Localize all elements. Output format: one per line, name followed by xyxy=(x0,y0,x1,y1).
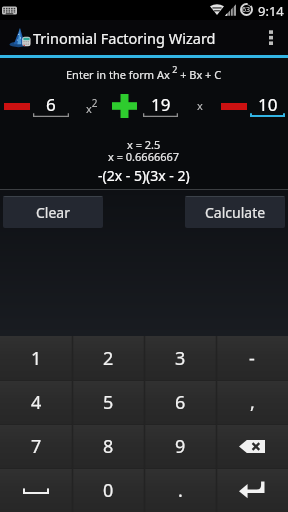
button[interactable]: Space xyxy=(0,468,72,512)
button[interactable]: . xyxy=(144,468,216,512)
button[interactable]: Toggle sign xyxy=(221,93,247,119)
staticText: -(2x - 5)(3x - 2) xyxy=(98,166,190,185)
staticText: x xyxy=(197,98,203,113)
button[interactable]: 4 xyxy=(0,380,72,424)
button[interactable]: 19 xyxy=(143,87,178,117)
staticText: 19 xyxy=(151,93,171,116)
button[interactable]: 9 xyxy=(144,424,216,468)
button[interactable]: - xyxy=(216,336,288,380)
staticText: 9 xyxy=(175,434,186,459)
staticText: 1 xyxy=(31,346,42,371)
staticText: 10 xyxy=(258,93,278,116)
staticText: 2 xyxy=(103,346,114,371)
button[interactable]: Clear xyxy=(3,196,103,228)
staticText: 63 xyxy=(242,5,251,15)
button[interactable]: 2 xyxy=(72,336,144,380)
staticText: Clear xyxy=(36,203,70,222)
button[interactable]: Toggle sign xyxy=(4,93,30,119)
staticText: x = 2.5 xyxy=(127,137,161,152)
staticText: 7 xyxy=(31,434,42,459)
staticText: Calculate xyxy=(205,203,266,222)
button[interactable]: 5 xyxy=(72,380,144,424)
button[interactable]: 3 xyxy=(144,336,216,380)
staticText: 3 xyxy=(175,346,186,371)
button[interactable]: , xyxy=(216,380,288,424)
staticText: 8 xyxy=(103,434,114,459)
button[interactable]: Calculate xyxy=(185,196,285,228)
button[interactable]: 1 xyxy=(0,336,72,380)
staticText: . xyxy=(178,478,183,503)
button[interactable]: Enter xyxy=(216,468,288,512)
staticText: x = 0.6666667 xyxy=(108,149,180,164)
staticText: 6 xyxy=(46,93,56,116)
staticText: Enter in the form Ax 2 + Bx + C xyxy=(66,63,222,79)
staticText: , xyxy=(250,390,255,415)
button[interactable]: Toggle sign xyxy=(112,94,137,118)
staticText: 0 xyxy=(103,478,114,503)
button[interactable]: 6 xyxy=(33,87,69,117)
button[interactable]: 0 xyxy=(72,468,144,512)
button[interactable]: 7 xyxy=(0,424,72,468)
staticText: 4 xyxy=(31,390,42,415)
staticText: 6 xyxy=(175,390,186,415)
button[interactable]: 8 xyxy=(72,424,144,468)
button[interactable]: Backspace xyxy=(216,424,288,468)
staticText: x2 xyxy=(86,96,98,117)
button[interactable]: More options xyxy=(254,20,288,55)
staticText: 5 xyxy=(103,390,114,415)
staticText: 9:14 xyxy=(258,2,284,20)
staticText: - xyxy=(249,346,255,371)
staticText: Trinomial Factoring Wizard xyxy=(33,28,216,48)
button[interactable]: 10 xyxy=(250,87,285,117)
button[interactable]: 6 xyxy=(144,380,216,424)
